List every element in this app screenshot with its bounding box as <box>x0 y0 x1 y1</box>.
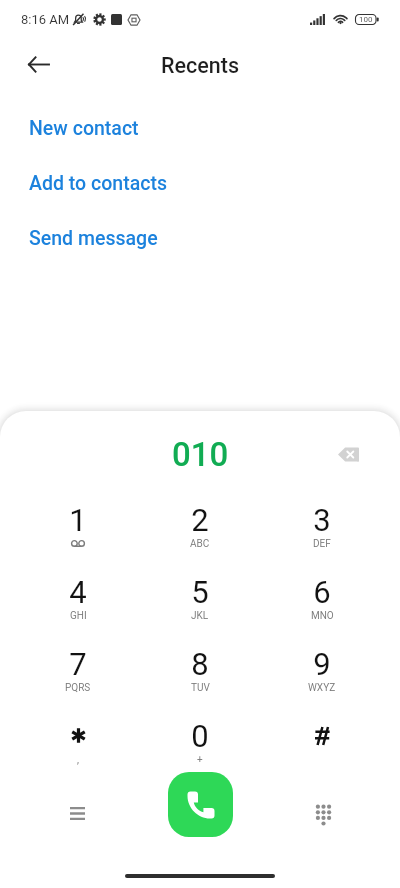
staticText: DEF <box>313 538 331 550</box>
staticText: 9 <box>313 646 331 682</box>
staticText: 1 <box>69 502 87 538</box>
staticText: Add to contacts <box>29 172 168 195</box>
staticText: New contact <box>29 117 139 140</box>
button[interactable]: 1 <box>17 489 139 561</box>
staticText: 8:16 AM <box>21 12 70 27</box>
button[interactable] <box>261 705 383 777</box>
button[interactable]: Backspace <box>326 432 370 476</box>
button[interactable]: 5 <box>139 561 261 633</box>
button[interactable]: 6 <box>261 561 383 633</box>
staticText: Recents <box>161 53 239 78</box>
staticText: 8 <box>191 646 209 682</box>
button[interactable]: , <box>17 705 139 777</box>
staticText: Send message <box>29 227 158 250</box>
button[interactable]: 7 <box>17 633 139 705</box>
button[interactable]: 2 <box>139 489 261 561</box>
staticText: PQRS <box>65 682 91 694</box>
staticText: MNO <box>311 610 334 622</box>
button[interactable]: 3 <box>261 489 383 561</box>
staticText: 100 <box>359 15 373 24</box>
button[interactable]: 0 <box>139 705 261 777</box>
staticText: 7 <box>69 646 87 682</box>
staticText: ABC <box>190 538 210 550</box>
button[interactable]: 4 <box>17 561 139 633</box>
staticText: , <box>77 754 79 766</box>
button[interactable]: Back <box>16 42 60 86</box>
staticText: 4 <box>69 574 87 610</box>
staticText: GHI <box>70 610 87 622</box>
button[interactable]: New contact <box>0 108 400 148</box>
staticText: + <box>197 754 203 766</box>
staticText: 6 <box>313 574 331 610</box>
staticText: 3 <box>313 502 331 538</box>
button[interactable]: Add to contacts <box>0 163 400 203</box>
staticText: JKL <box>191 610 209 622</box>
staticText: 5 <box>191 574 209 610</box>
button[interactable]: Call log <box>55 791 99 835</box>
button[interactable]: 9 <box>261 633 383 705</box>
staticText: WXYZ <box>308 682 336 694</box>
button[interactable]: Dialpad <box>301 791 345 835</box>
staticText: 0 <box>191 718 209 754</box>
button[interactable]: Call <box>168 772 233 837</box>
staticText: 010 <box>172 435 229 474</box>
button[interactable]: 8 <box>139 633 261 705</box>
staticText: TUV <box>191 682 210 694</box>
button[interactable]: Send message <box>0 218 400 258</box>
staticText: 2 <box>191 502 209 538</box>
